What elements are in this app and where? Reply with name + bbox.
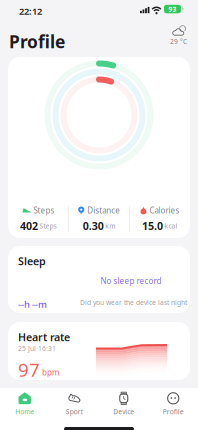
staticText: Steps (39, 221, 56, 230)
staticText: Heart rate (18, 330, 70, 344)
staticText: 402 (20, 219, 38, 233)
staticText: 0.30 (83, 219, 104, 233)
staticText: 29 °C (170, 37, 187, 46)
button[interactable]: Activity (8, 57, 190, 238)
staticText: bpm (42, 367, 59, 378)
staticText: Profile (163, 407, 184, 416)
button[interactable]: Device (99, 389, 148, 419)
button[interactable]: Sport (49, 389, 99, 419)
staticText: Distance (87, 205, 120, 216)
button[interactable]: Heart rate (8, 322, 190, 380)
staticText: Sleep (18, 254, 46, 268)
button[interactable]: Sleep (8, 246, 190, 313)
staticText: Steps (33, 205, 54, 216)
staticText: Did you wear the device last night (80, 298, 187, 307)
staticText: --h --m (18, 298, 47, 310)
staticText: Home (15, 407, 34, 416)
button[interactable]: Profile (148, 389, 198, 419)
staticText: No sleep record (100, 276, 161, 286)
staticText: 22:12 (19, 5, 42, 17)
staticText: kcal (165, 221, 178, 230)
button[interactable]: Home (0, 389, 49, 419)
staticText: Calories (150, 205, 180, 216)
staticText: 15.0 (142, 219, 163, 233)
staticText: 97 (18, 357, 40, 382)
staticText: Device (113, 407, 134, 416)
button[interactable]: Weather (170, 24, 187, 46)
staticText: Profile (9, 30, 65, 53)
staticText: 93 (168, 5, 176, 13)
staticText: km (105, 221, 115, 230)
staticText: Sport (66, 407, 83, 416)
staticText: 25 Jul 16:31 (18, 344, 56, 353)
